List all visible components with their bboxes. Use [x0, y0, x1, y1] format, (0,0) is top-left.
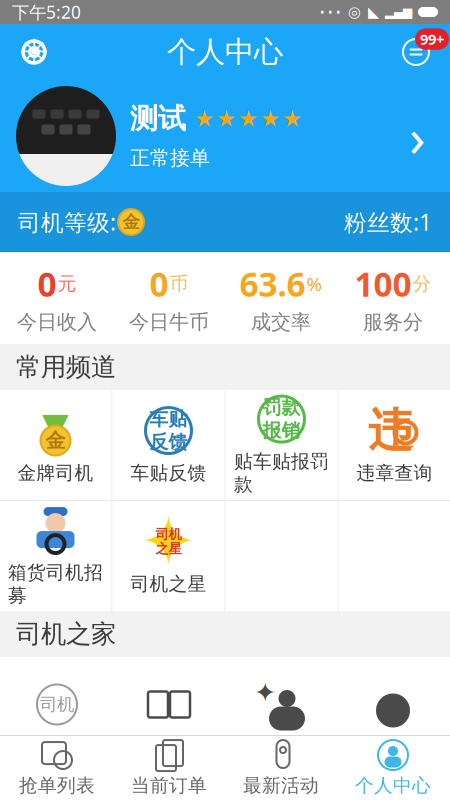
staticText: 成交率 — [251, 310, 311, 334]
staticText: 车贴反馈 — [130, 461, 206, 484]
staticText: 个人中心 — [355, 774, 431, 797]
staticText: 箱货司机招募 — [8, 561, 103, 607]
staticText: 当前订单 — [131, 774, 207, 797]
staticText: 之星 — [155, 540, 181, 557]
staticText: 司机之星 — [130, 572, 206, 595]
staticText: 正常接单 — [130, 146, 210, 170]
staticText: ★ — [282, 106, 302, 132]
staticText: 抢单列表 — [19, 774, 95, 797]
staticText: › — [409, 101, 426, 171]
button[interactable]: 车贴 — [112, 390, 224, 500]
staticText: 反馈 — [149, 430, 187, 453]
staticText: 违 — [368, 403, 413, 458]
staticText: 99+ — [420, 29, 444, 49]
button[interactable]: 个人中心 — [337, 735, 449, 800]
button[interactable]: 罚款 — [225, 390, 337, 500]
staticText: ✳︎ — [19, 32, 48, 72]
staticText: 车贴 — [149, 408, 187, 430]
staticText: 63.6 — [239, 262, 305, 306]
staticText: ◣ — [368, 4, 379, 20]
button[interactable]: ▼ — [0, 390, 111, 500]
staticText: 金牌司机 — [17, 461, 93, 484]
staticText: 贴车贴报罚款 — [234, 450, 329, 496]
staticText: 金 — [45, 428, 65, 453]
staticText: 测试 — [130, 101, 186, 136]
button[interactable]: 违 — [338, 390, 450, 500]
staticText: 元 — [57, 272, 76, 295]
button[interactable]: 消息 — [390, 28, 442, 76]
staticText: ▂▄▆ — [385, 5, 412, 19]
staticText: ◎ — [348, 4, 361, 20]
staticText: 司机之家 — [16, 618, 116, 649]
staticText: % — [306, 271, 322, 296]
staticText: 最新活动 — [243, 774, 319, 797]
button[interactable]: 箱货司机招募 — [0, 501, 111, 611]
staticText: 0 — [149, 262, 168, 306]
staticText: ★ — [216, 106, 236, 132]
button[interactable]: 设置 — [8, 28, 60, 76]
staticText: • • • — [320, 4, 341, 20]
staticText: ▼ — [42, 405, 69, 445]
staticText: 下午5:20 — [12, 0, 81, 23]
staticText: 常用频道 — [16, 351, 116, 382]
staticText: 今日收入 — [17, 310, 97, 334]
staticText: ✦ — [139, 502, 197, 581]
staticText: 币 — [169, 272, 188, 295]
staticText: 金 — [122, 211, 139, 233]
staticText: 粉丝数:1 — [344, 207, 432, 237]
staticText: 个人中心 — [167, 34, 283, 70]
button[interactable]: 个人资料 — [0, 80, 450, 192]
staticText: ★ — [238, 106, 258, 132]
staticText: 分 — [412, 272, 431, 295]
staticText: 违章查询 — [356, 461, 432, 484]
staticText: 司机等级: — [18, 207, 116, 237]
staticText: ★ — [260, 106, 280, 132]
staticText: 罚款 — [262, 396, 300, 419]
staticText: 司机 — [155, 526, 181, 543]
staticText: 今日牛币 — [129, 310, 209, 334]
button[interactable]: ✦ — [112, 501, 224, 611]
staticText: ✦ — [254, 677, 276, 708]
staticText: ★ — [194, 106, 214, 132]
staticText: 服务分 — [363, 310, 423, 334]
button[interactable]: 抢单列表 — [1, 735, 113, 800]
staticText: 司机 — [40, 694, 74, 715]
staticText: 100 — [354, 262, 411, 306]
button[interactable]: 当前订单 — [113, 735, 225, 800]
button[interactable]: 最新活动 — [225, 735, 337, 800]
staticText: 报销 — [262, 419, 300, 442]
staticText: 0 — [37, 262, 56, 306]
